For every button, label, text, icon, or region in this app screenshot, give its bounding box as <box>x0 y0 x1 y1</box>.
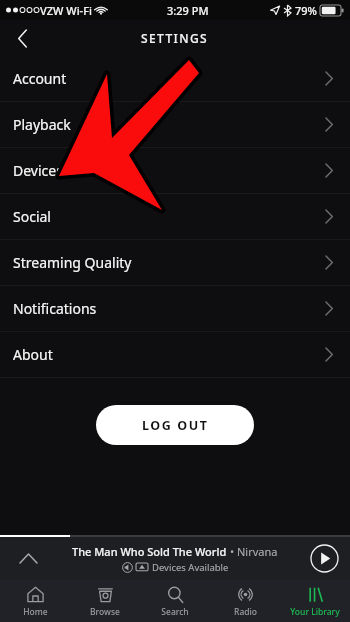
button[interactable]: Notifications <box>0 286 350 331</box>
staticText: VZW Wi-Fi <box>40 3 92 18</box>
staticText: About <box>13 345 53 364</box>
button[interactable]: Playback <box>0 102 350 147</box>
button[interactable]: Play <box>310 544 339 573</box>
staticText: 3:29 PM <box>167 3 209 18</box>
staticText: Notifications <box>13 299 97 318</box>
button[interactable]: Back <box>0 20 44 56</box>
staticText: 79% <box>295 3 317 18</box>
button[interactable]: Account <box>0 56 350 101</box>
button[interactable]: About <box>0 332 350 377</box>
staticText: LOG OUT <box>142 417 209 434</box>
staticText: Social <box>13 207 51 226</box>
button[interactable]: Home <box>0 580 70 622</box>
staticText: Your Library <box>290 606 340 618</box>
staticText: Devices <box>13 161 63 180</box>
button[interactable]: Social <box>0 194 350 239</box>
button[interactable]: Search <box>140 580 210 622</box>
button[interactable]: LOG OUT <box>96 405 254 445</box>
staticText: Search <box>161 606 189 618</box>
button[interactable]: Expand player <box>0 537 56 580</box>
staticText: Devices Available <box>152 561 229 574</box>
staticText: Streaming Quality <box>13 253 132 272</box>
button[interactable]: Radio <box>210 580 280 622</box>
button[interactable]: Your Library <box>280 580 350 622</box>
staticText: Radio <box>234 606 257 618</box>
button[interactable]: Browse <box>70 580 140 622</box>
staticText: • Nirvana <box>230 544 278 559</box>
button[interactable]: Devices <box>0 148 350 193</box>
staticText: SETTINGS <box>141 30 209 46</box>
staticText: Browse <box>90 606 120 618</box>
button[interactable]: Streaming Quality <box>0 240 350 285</box>
staticText: Playback <box>13 115 71 134</box>
staticText: The Man Who Sold The World <box>72 544 230 559</box>
staticText: Home <box>23 606 48 618</box>
staticText: Account <box>13 69 67 88</box>
